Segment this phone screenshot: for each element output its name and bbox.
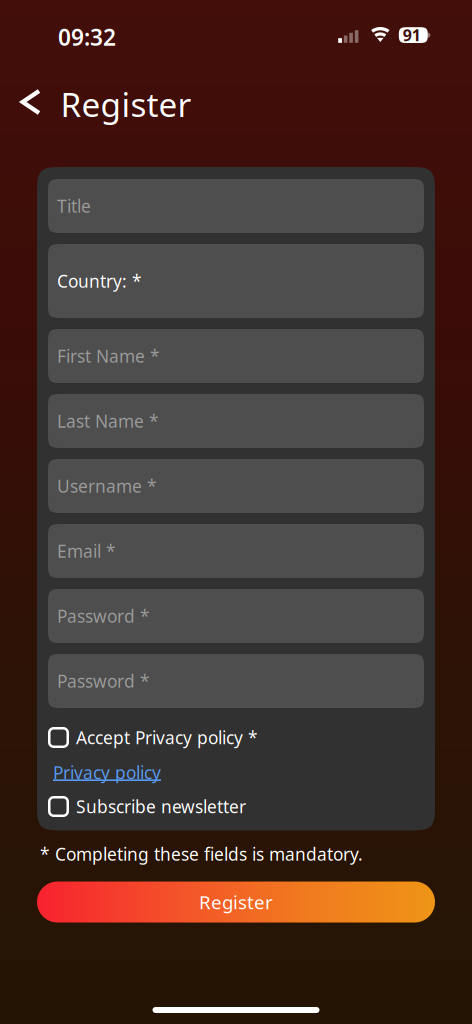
- staticText: Subscribe newsletter: [76, 795, 246, 818]
- staticText: Country: *: [57, 269, 142, 292]
- staticText: Register: [60, 82, 191, 126]
- staticText: 09:32: [58, 22, 116, 52]
- staticText: * Completing these fields is mandatory.: [40, 842, 363, 865]
- button[interactable]: Email *: [48, 524, 424, 578]
- button[interactable]: Back: [0, 77, 60, 131]
- button[interactable]: Username *: [48, 459, 424, 513]
- button[interactable]: Privacy policy: [48, 761, 161, 781]
- staticText: Username *: [57, 474, 157, 497]
- button[interactable]: Country: *: [48, 244, 424, 318]
- button[interactable]: First Name *: [48, 329, 424, 383]
- staticText: Last Name *: [57, 409, 159, 432]
- button[interactable]: Register: [37, 881, 435, 922]
- button[interactable]: Last Name *: [48, 394, 424, 448]
- button[interactable]: Accept Privacy policy *: [48, 727, 424, 748]
- staticText: Password *: [57, 669, 150, 692]
- staticText: Accept Privacy policy *: [76, 726, 258, 749]
- button[interactable]: Title: [48, 179, 424, 233]
- staticText: Privacy policy: [53, 761, 161, 784]
- staticText: Register: [199, 890, 273, 914]
- staticText: Password *: [57, 604, 150, 627]
- button[interactable]: Password *: [48, 589, 424, 643]
- button[interactable]: Password *: [48, 654, 424, 708]
- staticText: Title: [57, 194, 91, 217]
- staticText: 91: [403, 24, 421, 46]
- staticText: First Name *: [57, 344, 160, 367]
- button[interactable]: Subscribe newsletter: [48, 796, 424, 817]
- staticText: Email *: [57, 539, 116, 562]
